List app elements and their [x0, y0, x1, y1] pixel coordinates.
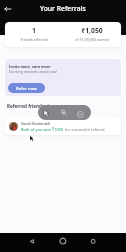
- staticText: 1: [47, 103, 50, 109]
- staticText: of ₹5,00,000 earned: [75, 37, 109, 42]
- staticText: Refer now: [16, 85, 37, 91]
- staticText: Your Referrals: [40, 4, 86, 13]
- staticText: Friends referred: [20, 37, 48, 42]
- staticText: Invite more, earn more: [9, 64, 51, 69]
- staticText: ₹1,050: [81, 26, 103, 35]
- staticText: for successful referral: [65, 127, 105, 132]
- staticText: Sonal Deshmukh: [21, 121, 50, 126]
- staticText: Referred friends: [7, 103, 45, 109]
- button[interactable]: Back: [27, 236, 37, 246]
- button[interactable]: Sonal Deshmukh: [5, 117, 121, 135]
- staticText: Both of you won ₹1050: [21, 127, 65, 132]
- button[interactable]: Home: [58, 236, 68, 246]
- staticText: Exciting rewards await you!: [9, 69, 58, 74]
- button[interactable]: Refer now: [8, 83, 45, 93]
- staticText: 1: [32, 26, 36, 35]
- button[interactable]: Back: [2, 3, 14, 15]
- button[interactable]: Recents: [88, 236, 98, 246]
